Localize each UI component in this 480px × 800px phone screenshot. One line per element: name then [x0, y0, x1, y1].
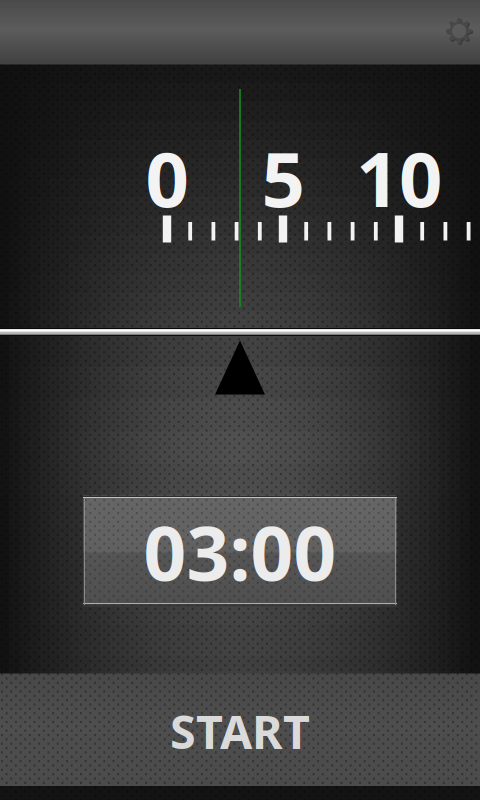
staticText: 10 — [356, 127, 442, 228]
button[interactable]: Settings — [435, 7, 480, 55]
staticText: 03:00 — [143, 502, 336, 601]
staticText: START — [170, 700, 310, 762]
staticText: 0 — [145, 127, 188, 228]
button[interactable]: START — [0, 674, 480, 786]
staticText: 5 — [261, 127, 304, 228]
